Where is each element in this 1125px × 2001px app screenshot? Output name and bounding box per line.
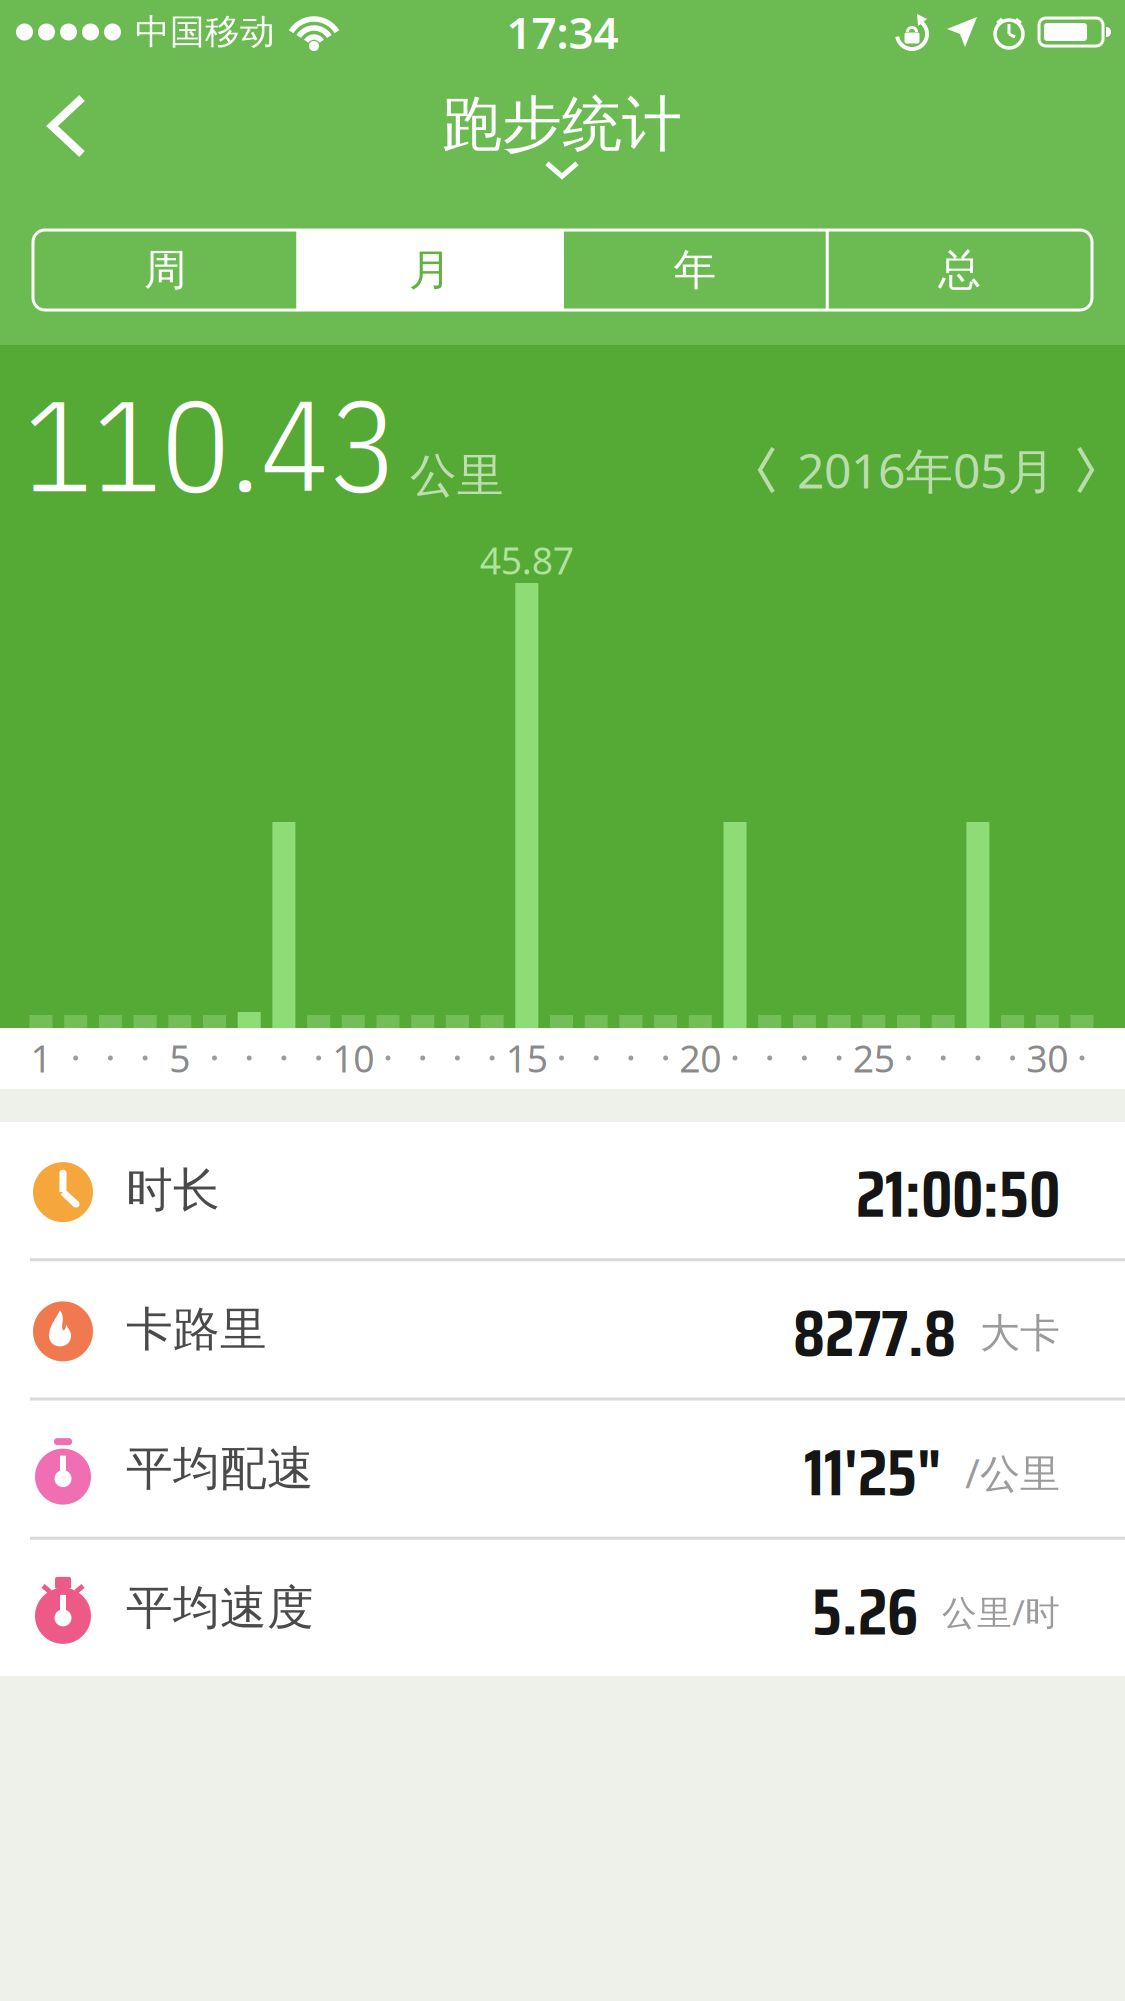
staticText: 25 (853, 1033, 895, 1083)
button[interactable]: 周 (33, 230, 298, 310)
staticText: 月 (409, 244, 452, 296)
staticText: 年 (673, 244, 716, 296)
staticText: 总 (938, 244, 981, 296)
staticText: 21:00:50 (856, 1143, 1060, 1245)
staticText: 公里 (410, 447, 504, 504)
staticText: 跑步统计 (442, 88, 682, 161)
staticText: 5.26 (812, 1560, 918, 1663)
staticText: 17:34 (506, 3, 618, 61)
staticText: 11'25" (804, 1421, 941, 1524)
staticText: 周 (144, 244, 187, 296)
button[interactable]: 月 (298, 230, 563, 310)
staticText: 20 (679, 1033, 721, 1083)
button[interactable]: 年 (562, 230, 827, 310)
staticText: 30 (1026, 1033, 1068, 1083)
staticText: /公里 (965, 1446, 1060, 1499)
staticText: 卡路里 (126, 1301, 267, 1358)
button[interactable]: Next month (1063, 434, 1107, 506)
button[interactable]: 总 (827, 230, 1092, 310)
button[interactable]: Previous month (745, 434, 789, 506)
staticText: 1 (30, 1033, 51, 1083)
staticText: 110.43 (23, 360, 398, 526)
staticText: 平均速度 (126, 1579, 314, 1636)
staticText: 5 (169, 1033, 190, 1083)
staticText: 45.87 (480, 535, 574, 585)
staticText: 大卡 (980, 1309, 1060, 1358)
staticText: 中国移动 (135, 11, 275, 53)
button[interactable]: 跑步统计 (442, 88, 682, 178)
staticText: 时长 (126, 1161, 220, 1219)
button[interactable]: Back (30, 88, 104, 164)
staticText: 10 (332, 1033, 374, 1083)
staticText: 2016年05月 (797, 438, 1055, 502)
staticText: 平均配速 (126, 1440, 314, 1497)
staticText: 15 (506, 1033, 548, 1083)
staticText: 8277.8 (793, 1282, 956, 1385)
staticText: 公里/时 (942, 1589, 1060, 1635)
